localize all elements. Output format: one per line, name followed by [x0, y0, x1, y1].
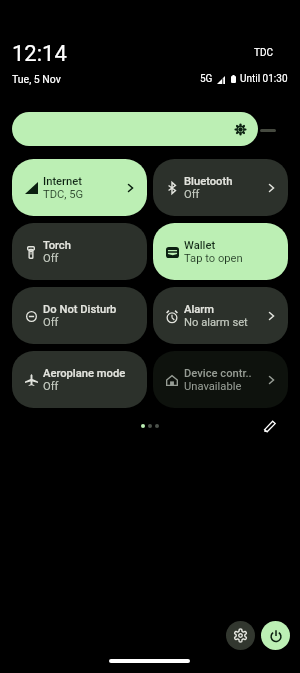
button[interactable]: Torch	[12, 223, 147, 280]
button[interactable]: Internet	[12, 159, 147, 216]
staticText: Alarm	[184, 303, 215, 316]
staticText: Internet	[43, 175, 82, 188]
button[interactable]: Power	[261, 621, 290, 650]
staticText: TDC, 5G	[43, 188, 84, 201]
staticText: Tap to open	[184, 252, 243, 265]
staticText: Aeroplane mode	[43, 367, 126, 380]
staticText: Bluetooth	[184, 175, 233, 188]
staticText: TDC	[254, 47, 274, 59]
staticText: Unavailable	[184, 380, 242, 393]
button[interactable]: Wallet	[153, 223, 288, 280]
button[interactable]: Device contr..	[153, 351, 288, 408]
button[interactable]: Aeroplane mode	[12, 351, 147, 408]
staticText: Do Not Disturb	[43, 303, 117, 316]
staticText: 5G	[200, 73, 213, 85]
staticText: Device contr..	[184, 367, 252, 380]
staticText: Wallet	[184, 239, 216, 252]
staticText: Off	[43, 316, 59, 329]
staticText: Off	[184, 188, 200, 201]
staticText: 12:14	[12, 41, 67, 67]
staticText: Off	[43, 252, 59, 265]
button[interactable]: Bluetooth	[153, 159, 288, 216]
button[interactable]: Brightness	[12, 112, 258, 146]
staticText: Torch	[43, 239, 71, 252]
button[interactable]: Edit tiles	[259, 415, 281, 437]
staticText: Off	[43, 380, 59, 393]
staticText: Until 01:30	[240, 73, 288, 85]
staticText: Tue, 5 Nov	[12, 73, 61, 85]
button[interactable]: Settings	[226, 621, 255, 650]
staticText: No alarm set	[184, 316, 248, 329]
button[interactable]: Do Not Disturb	[12, 287, 147, 344]
button[interactable]: Alarm	[153, 287, 288, 344]
